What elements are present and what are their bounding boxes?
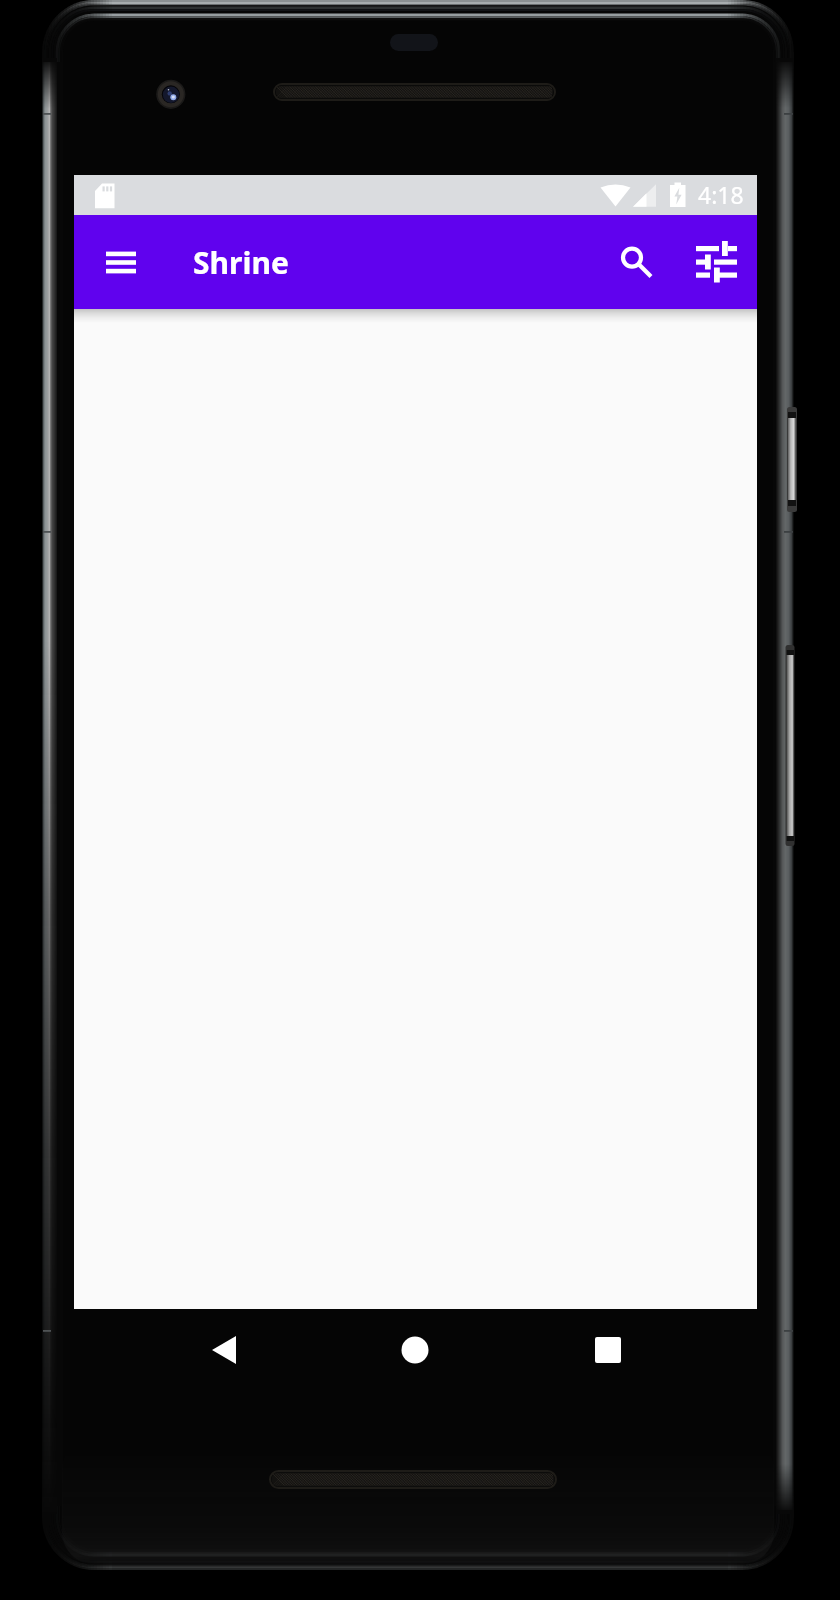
button[interactable]: Home — [390, 1325, 440, 1375]
staticText: Shrine — [193, 242, 289, 283]
button[interactable]: Filter — [696, 238, 737, 286]
button[interactable]: Menu — [82, 234, 138, 290]
button[interactable]: Search — [603, 234, 659, 290]
button[interactable]: Recent apps — [583, 1325, 633, 1375]
staticText: 4:18 — [698, 179, 744, 210]
button[interactable]: Back — [199, 1325, 249, 1375]
